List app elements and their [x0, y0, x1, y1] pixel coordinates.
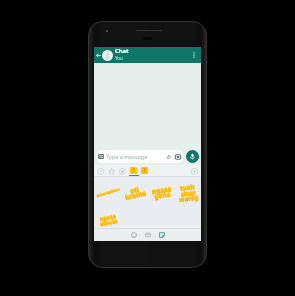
button[interactable]: Sticker pack 2	[139, 165, 150, 177]
button[interactable]: Sticker	[175, 181, 201, 203]
staticText: Type a message	[106, 153, 148, 160]
staticText: ngaca goña	[151, 183, 173, 200]
button[interactable]: Sticker pack 1	[128, 165, 139, 177]
button[interactable]: Sticker	[94, 181, 121, 203]
button[interactable]: Favourites	[106, 165, 117, 177]
staticText: You	[115, 55, 123, 61]
button[interactable]: Add stickers	[189, 165, 200, 177]
staticText: eti krama	[123, 183, 147, 201]
button[interactable]: Record voice message	[186, 150, 199, 163]
button[interactable]: GIF	[144, 229, 151, 241]
staticText: tuah chuy warag	[177, 182, 199, 203]
staticText: tuah chuy warag	[177, 183, 199, 204]
button[interactable]: Attach	[165, 150, 173, 163]
button[interactable]: Sticker	[121, 181, 148, 203]
staticText: 2	[143, 167, 146, 174]
staticText: ngaca elisoia	[98, 212, 118, 228]
button[interactable]: More options	[189, 47, 199, 63]
staticText: salam sejahtera	[96, 187, 120, 197]
button[interactable]: Back	[94, 47, 102, 63]
staticText: 1	[132, 167, 135, 174]
button[interactable]: Emoji	[130, 229, 137, 241]
button[interactable]: Sticker	[94, 208, 121, 230]
staticText: eti krama	[123, 184, 147, 202]
button[interactable]: Stickers	[117, 165, 128, 177]
button[interactable]: Sticker	[148, 181, 175, 203]
staticText: Chat	[115, 47, 129, 55]
staticText: salam sejahtera	[96, 188, 120, 198]
button[interactable]: Stickers	[158, 229, 165, 241]
button[interactable]: Camera	[174, 150, 182, 163]
staticText: ngaca elisoia	[98, 211, 118, 227]
button[interactable]: Profile photo	[102, 50, 113, 61]
button[interactable]: Recent	[95, 165, 106, 177]
staticText: ngaca goña	[151, 184, 173, 201]
button[interactable]: Type a message	[96, 150, 184, 163]
